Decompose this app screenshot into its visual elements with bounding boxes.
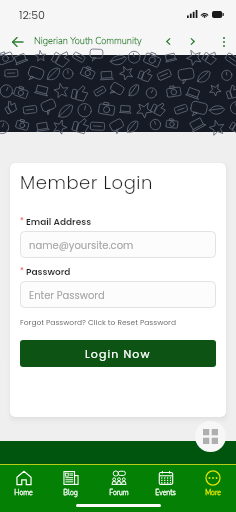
staticText: Blog [63, 488, 78, 498]
button[interactable]: Home [0, 470, 47, 498]
button[interactable]: Apps menu [195, 421, 226, 452]
staticText: Email Address [26, 216, 92, 229]
staticText: Member Login [20, 170, 153, 195]
button[interactable]: name@yoursite.com [20, 231, 216, 258]
staticText: Events [155, 488, 176, 498]
staticText: Forum [109, 488, 129, 498]
button[interactable]: Login Now [20, 340, 216, 367]
staticText: * [20, 266, 24, 277]
button[interactable]: Forum [95, 470, 142, 498]
staticText: Nigerian Youth Community [34, 35, 142, 48]
button[interactable]: More options [212, 30, 235, 53]
staticText: name@yoursite.com [29, 238, 134, 252]
staticText: Enter Password [29, 288, 105, 302]
staticText: * [20, 216, 24, 227]
staticText: More [205, 488, 221, 498]
button[interactable]: Previous page [157, 30, 180, 53]
staticText: Login Now [85, 346, 151, 361]
button[interactable]: Next page [181, 30, 204, 53]
button[interactable]: Back [5, 28, 29, 55]
button[interactable]: More [189, 470, 236, 498]
button[interactable]: Events [142, 470, 189, 498]
staticText: Password [26, 266, 71, 279]
staticText: Home [14, 488, 33, 498]
button[interactable]: Forgot Password? Click to Reset Password [20, 317, 176, 327]
button[interactable]: Enter Password [20, 281, 216, 308]
button[interactable]: Blog [47, 470, 94, 498]
staticText: 12:50 [19, 7, 46, 22]
